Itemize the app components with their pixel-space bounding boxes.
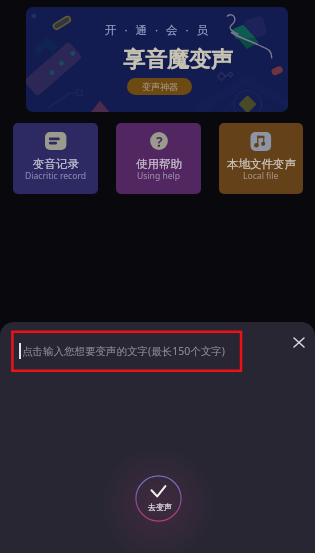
- staticText: 本地文件变声: [227, 157, 296, 171]
- button[interactable]: 变声神器: [127, 78, 192, 95]
- staticText: Using help: [137, 170, 181, 182]
- staticText: 去变声: [148, 502, 172, 512]
- button[interactable]: ?: [116, 123, 201, 194]
- staticText: 变声神器: [142, 81, 178, 92]
- button[interactable]: 去变声: [135, 475, 182, 522]
- button[interactable]: 变音记录: [13, 123, 98, 194]
- button[interactable]: Close: [286, 329, 312, 355]
- button[interactable]: 开 · 通 · 会 · 员: [26, 7, 288, 112]
- staticText: 开 · 通 · 会 · 员: [105, 22, 211, 38]
- staticText: 享音魔变声: [123, 46, 233, 74]
- button[interactable]: 点击输入您想要变声的文字(最长150个文字): [12, 332, 241, 371]
- staticText: ?: [156, 132, 163, 151]
- staticText: Diacritic record: [25, 170, 87, 182]
- staticText: 变音记录: [33, 157, 79, 171]
- staticText: Local file: [243, 170, 279, 182]
- staticText: 使用帮助: [136, 157, 182, 171]
- button[interactable]: 本地文件变声: [219, 123, 303, 194]
- staticText: 点击输入您想要变声的文字(最长150个文字): [22, 344, 225, 358]
